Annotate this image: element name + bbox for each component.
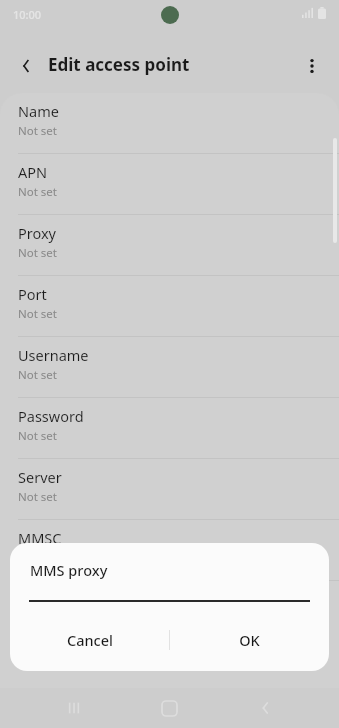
button[interactable]: OK <box>170 619 329 661</box>
staticText: Not set <box>18 367 57 383</box>
staticText: Not set <box>18 184 57 200</box>
button[interactable]: MMSC <box>0 520 339 581</box>
button[interactable]: Cancel <box>10 619 169 661</box>
staticText: Not set <box>18 123 57 139</box>
staticText: Not set <box>18 489 57 505</box>
button[interactable]: APN <box>0 154 339 215</box>
staticText: Name <box>18 101 59 121</box>
staticText: Proxy <box>18 223 57 243</box>
button[interactable]: MMS proxy <box>0 581 339 642</box>
button[interactable]: Name <box>0 93 339 154</box>
button[interactable]: Username <box>0 337 339 398</box>
button[interactable]: Port <box>0 276 339 337</box>
staticText: MMSC <box>18 528 62 548</box>
staticText: Not set <box>18 428 57 444</box>
staticText: Cancel <box>67 630 113 650</box>
staticText: Username <box>18 345 89 365</box>
staticText: MMS proxy <box>30 560 108 580</box>
button[interactable]: More options <box>296 50 328 82</box>
staticText: OK <box>239 630 260 650</box>
staticText: 10:00 <box>13 7 42 22</box>
staticText: Port <box>18 284 47 304</box>
staticText: Not set <box>18 306 57 322</box>
staticText: Password <box>18 406 84 426</box>
staticText: APN <box>18 162 48 182</box>
button[interactable]: Server <box>0 459 339 520</box>
button[interactable]: Password <box>0 398 339 459</box>
button[interactable]: Home <box>153 692 185 724</box>
staticText: MMS proxy <box>18 589 95 609</box>
button[interactable]: Back <box>10 50 42 82</box>
staticText: Edit access point <box>48 53 190 76</box>
button[interactable]: Proxy <box>0 215 339 276</box>
staticText: Server <box>18 467 62 487</box>
staticText: Not set <box>18 245 57 261</box>
